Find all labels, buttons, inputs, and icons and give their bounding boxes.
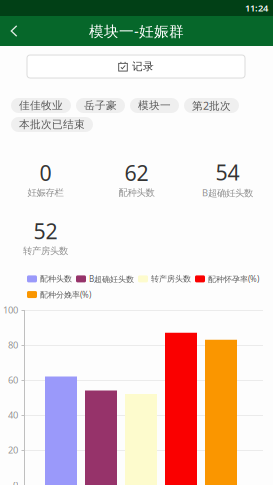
staticText: 配种头数: [40, 274, 72, 284]
staticText: 0: [39, 158, 51, 187]
staticText: 模块一: [138, 99, 171, 112]
staticText: 40: [8, 409, 18, 421]
staticText: B超确妊头数: [89, 274, 134, 284]
button[interactable]: 记录: [27, 55, 245, 78]
staticText: 54: [215, 158, 239, 186]
staticText: 岳子豪: [84, 99, 117, 112]
staticText: B超确妊头数: [202, 186, 253, 199]
staticText: 第2批次: [192, 98, 231, 113]
staticText: 11:24: [245, 2, 268, 14]
staticText: 模块一-妊娠群: [89, 21, 184, 41]
staticText: 60: [8, 374, 18, 386]
staticText: 62: [124, 158, 148, 187]
staticText: 80: [8, 339, 18, 351]
staticText: 20: [8, 444, 18, 456]
staticText: 记录: [132, 60, 154, 73]
staticText: 配种怀孕率(%): [208, 274, 259, 284]
staticText: 100: [3, 304, 18, 316]
staticText: 52: [33, 217, 57, 245]
staticText: 妊娠存栏: [27, 187, 63, 198]
staticText: 配种分娩率(%): [40, 289, 91, 300]
staticText: 佳佳牧业: [19, 99, 63, 112]
staticText: 转产房头数: [23, 245, 68, 257]
staticText: 0: [13, 479, 18, 485]
staticText: 配种头数: [118, 187, 154, 198]
staticText: 本批次已结束: [19, 118, 85, 131]
button[interactable]: Back: [0, 16, 28, 46]
staticText: 转产房头数: [151, 274, 191, 284]
